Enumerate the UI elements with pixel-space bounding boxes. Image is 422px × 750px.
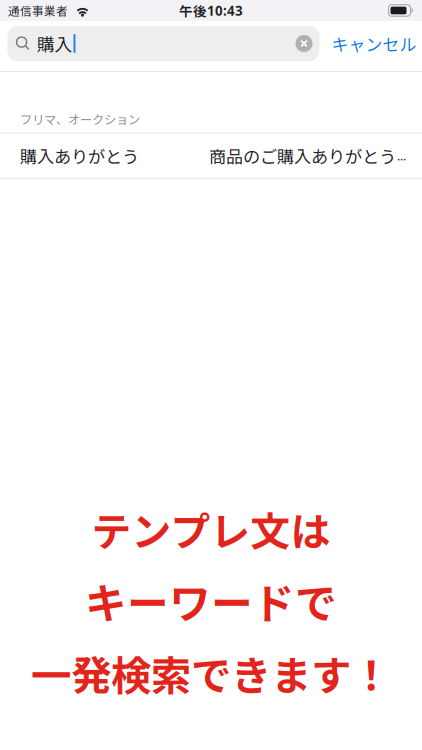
button[interactable]: 購入ありがとう — [0, 134, 422, 178]
staticText: キーワードで — [85, 570, 337, 631]
button[interactable]: 購入 — [7, 26, 319, 61]
staticText: テンプレ文は — [91, 500, 330, 558]
staticText: 商品のご購入ありがとう — [209, 143, 396, 168]
staticText: キャンセル — [331, 31, 416, 56]
staticText: 10:43 — [207, 1, 243, 20]
staticText: 通信事業者 — [8, 2, 68, 19]
button[interactable]: キャンセル — [319, 26, 422, 61]
staticText: 一発検索できます！ — [31, 644, 391, 702]
staticText: フリマ、オークション — [20, 110, 140, 128]
staticText: 午後 — [179, 1, 207, 20]
staticText: 購入ありがとう — [20, 143, 139, 168]
staticText: ... — [397, 148, 406, 164]
staticText: 購入 — [36, 31, 72, 56]
